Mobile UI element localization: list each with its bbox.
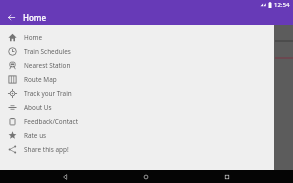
button[interactable]: Home <box>0 30 274 44</box>
button[interactable]: Share this app! <box>0 142 274 156</box>
staticText: Train Schedules <box>24 47 71 56</box>
staticText: Share this app! <box>24 145 69 154</box>
button[interactable]: Rate us <box>0 128 274 142</box>
staticText: 12:54 <box>274 1 290 9</box>
button[interactable]: Recent apps <box>212 170 242 183</box>
staticText: Feedback/Contact <box>24 117 78 126</box>
staticText: Nearest Station <box>24 61 71 70</box>
staticText: Home <box>23 12 47 23</box>
button[interactable]: Back <box>50 170 80 183</box>
button[interactable]: Feedback/Contact <box>0 114 274 128</box>
staticText: Home <box>24 33 43 42</box>
staticText: Rate us <box>24 131 47 140</box>
button[interactable]: Train Schedules <box>0 44 274 58</box>
staticText: Track your Train <box>24 89 72 98</box>
staticText: About Us <box>24 103 52 112</box>
button[interactable]: Track your Train <box>0 86 274 100</box>
button[interactable]: Route Map <box>0 72 274 86</box>
button[interactable]: About Us <box>0 100 274 114</box>
staticText: Route Map <box>24 75 57 84</box>
button[interactable]: Back <box>4 10 19 25</box>
button[interactable]: Nearest Station <box>0 58 274 72</box>
button[interactable]: Home <box>131 170 161 183</box>
